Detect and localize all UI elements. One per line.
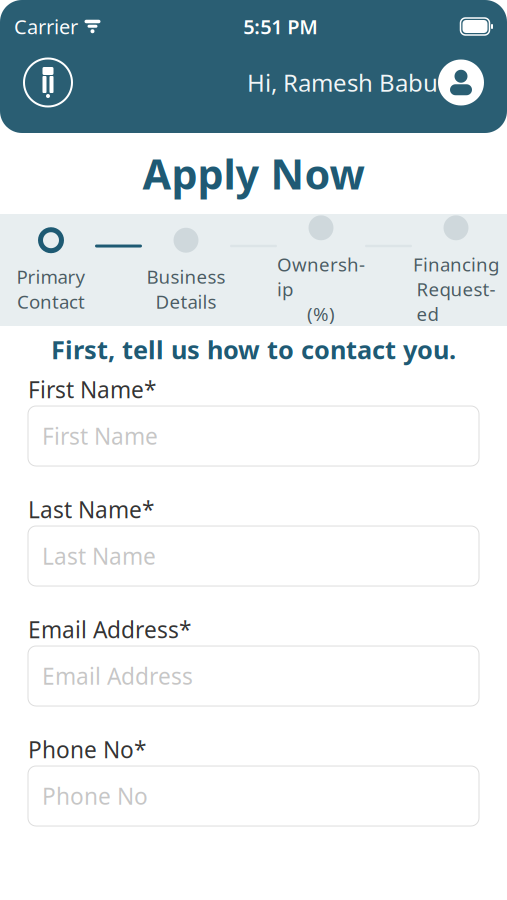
staticText: First, tell us how to contact you. [51,333,456,366]
staticText: First Name [42,421,158,451]
button[interactable]: Financing [412,214,500,326]
staticText: Requested [416,277,495,326]
button[interactable]: Business [142,226,230,314]
button[interactable]: Primary [7,226,95,314]
staticText: 5:51 PM [243,13,318,40]
staticText: Contact [17,289,85,314]
staticText: Phone No* [28,734,146,764]
staticText: Details [155,289,216,314]
staticText: Last Name* [28,494,154,524]
staticText: Financing [413,252,499,277]
staticText: Phone No [42,781,148,811]
button[interactable]: First Name [28,406,479,466]
button[interactable]: Email Address [28,646,479,706]
staticText: Hi, Ramesh Babu [247,67,438,98]
staticText: Primary [16,264,85,289]
button[interactable]: Ownership [277,214,365,326]
button[interactable]: Phone No [28,766,479,826]
staticText: Business [146,264,225,289]
staticText: Email Address [42,661,193,691]
button[interactable]: Account [438,59,484,105]
button[interactable]: Last Name [28,526,479,586]
staticText: First Name* [28,374,156,404]
staticText: Last Name [42,541,156,571]
staticText: Email Address* [28,614,191,644]
staticText: (%) [307,301,335,326]
staticText: Carrier [14,13,78,40]
staticText: Apply Now [142,146,364,201]
staticText: Ownership [277,252,365,301]
